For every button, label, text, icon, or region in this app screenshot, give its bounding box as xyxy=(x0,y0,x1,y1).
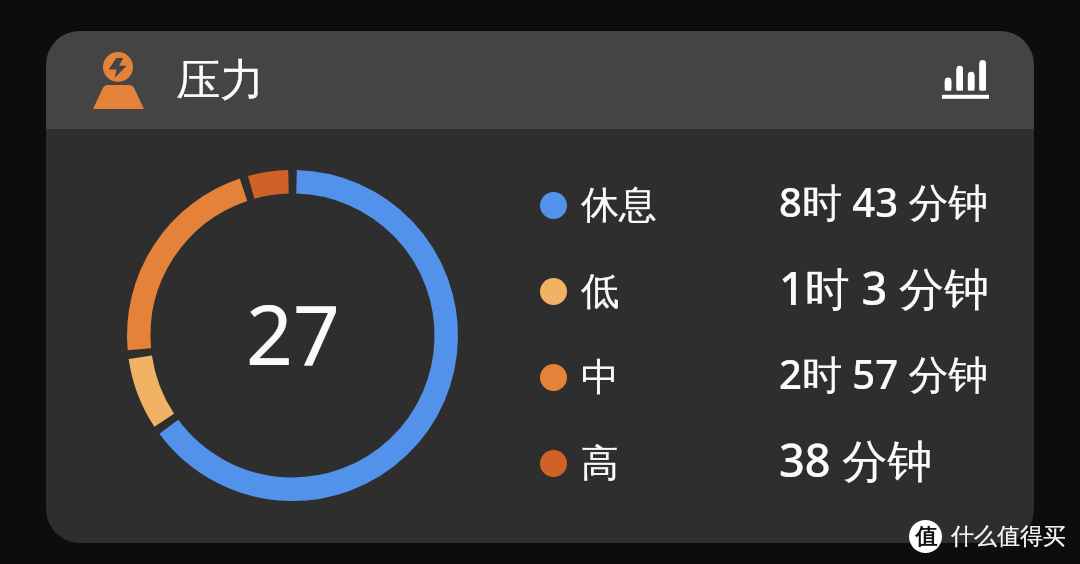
staticText: 什么值得买 xyxy=(951,522,1066,551)
staticText: 中 xyxy=(581,353,619,401)
staticText: 压力 xyxy=(176,53,264,108)
staticText: 8时 43 分钟 xyxy=(779,174,989,229)
button[interactable]: Stress history chart xyxy=(921,41,1009,119)
staticText: 27 xyxy=(246,277,340,389)
button[interactable]: 休息 xyxy=(540,175,992,235)
button[interactable]: 低 xyxy=(540,261,992,321)
button[interactable]: 压力 xyxy=(46,31,1034,129)
staticText: 38 分钟 xyxy=(779,429,933,489)
button[interactable]: 高 xyxy=(540,433,992,493)
staticText: 1时 3 分钟 xyxy=(779,257,989,317)
staticText: 休息 xyxy=(581,181,657,229)
staticText: 2时 57 分钟 xyxy=(779,346,989,401)
staticText: 值 xyxy=(915,523,937,551)
button[interactable]: 27 xyxy=(126,169,459,502)
staticText: 高 xyxy=(581,439,619,487)
staticText: 低 xyxy=(581,267,619,315)
button[interactable]: 中 xyxy=(540,347,992,407)
